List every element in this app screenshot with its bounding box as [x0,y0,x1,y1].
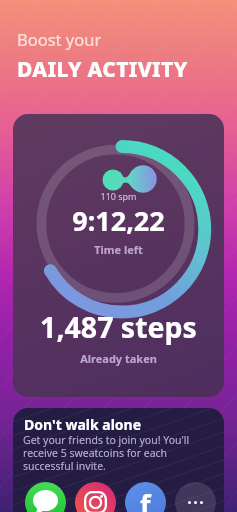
staticText: Don't walk alone [24,415,142,434]
staticText: Already taken [13,351,224,366]
button[interactable]: Share via Instagram [75,482,116,512]
button[interactable]: Share via Facebook [125,482,166,512]
staticText: DAILY ACTIVITY [17,55,188,84]
staticText: Time left [13,242,224,257]
staticText: f [140,486,151,512]
staticText: Boost your [17,28,102,50]
staticText: 1,487 steps [13,308,224,347]
staticText: 9:12,22 [13,202,224,239]
staticText: Get your friends to join you! You'll rec… [23,433,213,473]
staticText: 110 spm [13,190,224,202]
button[interactable]: Share via Messages [25,482,66,512]
button[interactable]: More sharing options [175,482,216,512]
